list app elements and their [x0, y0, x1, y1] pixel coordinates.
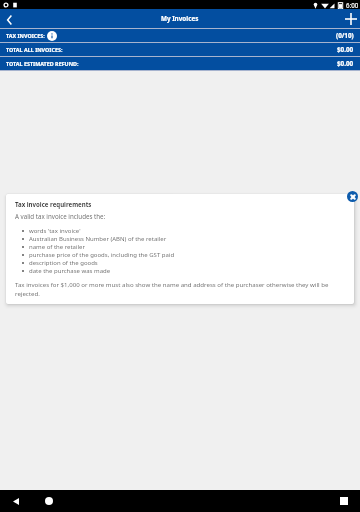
staticText: name of the retailer: [29, 243, 85, 251]
staticText: words 'tax invoice': [29, 227, 81, 235]
staticText: (0/10): [336, 31, 354, 40]
staticText: purchase price of the goods, including t…: [29, 251, 175, 259]
staticText: My Invoices: [161, 14, 199, 23]
staticText: 6:00: [346, 1, 359, 9]
button[interactable]: Recent apps: [334, 491, 354, 511]
button[interactable]: TOTAL ESTIMATED REFUND:: [0, 57, 360, 70]
button[interactable]: TOTAL ALL INVOICES:: [0, 43, 360, 56]
button[interactable]: Back: [6, 491, 26, 511]
staticText: Australian Business Number (ABN) of the …: [29, 235, 167, 243]
staticText: TAX INVOICES:: [6, 32, 45, 39]
button[interactable]: Add invoice: [338, 9, 360, 28]
staticText: TOTAL ESTIMATED REFUND:: [6, 60, 79, 67]
button[interactable]: TAX INVOICES:: [0, 29, 360, 42]
staticText: $0.00: [337, 45, 354, 54]
staticText: Tax invoices for $1,000 or more must als…: [15, 280, 342, 298]
staticText: TOTAL ALL INVOICES:: [6, 46, 63, 53]
button[interactable]: Close: [347, 191, 358, 202]
staticText: A valid tax invoice includes the:: [15, 212, 106, 220]
staticText: description of the goods: [29, 259, 98, 267]
staticText: date the purchase was made: [29, 267, 111, 275]
button[interactable]: Home: [39, 491, 59, 511]
button[interactable]: Back: [0, 9, 20, 28]
staticText: Tax invoice requirements: [15, 200, 92, 208]
staticText: $0.00: [337, 59, 354, 68]
